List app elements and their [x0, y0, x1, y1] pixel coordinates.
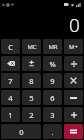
button[interactable]: C — [1, 39, 20, 54]
button[interactable]: Equals — [64, 124, 83, 139]
staticText: C — [8, 42, 13, 52]
staticText: M+ — [69, 43, 78, 51]
button[interactable]: Plus — [64, 107, 83, 122]
button[interactable]: Multiply — [64, 73, 83, 88]
button[interactable]: MR — [43, 39, 62, 54]
staticText: 9 — [50, 76, 55, 86]
staticText: 1 — [8, 110, 13, 120]
button[interactable]: % — [43, 56, 62, 71]
button[interactable]: Plus minus — [22, 56, 41, 71]
staticText: 2 — [29, 110, 34, 120]
button[interactable]: . — [43, 124, 62, 139]
button[interactable]: Divide — [64, 56, 83, 71]
staticText: 0 — [19, 127, 24, 137]
button[interactable]: 2 — [22, 107, 41, 122]
staticText: 7 — [8, 76, 13, 86]
staticText: 5 — [29, 93, 34, 103]
staticText: % — [49, 59, 56, 69]
button[interactable]: 8 — [22, 73, 41, 88]
staticText: MC — [27, 43, 37, 51]
button[interactable]: 3 — [43, 107, 62, 122]
staticText: 6 — [50, 93, 55, 103]
staticText: . — [51, 127, 54, 137]
button[interactable]: 1 — [1, 107, 20, 122]
button[interactable]: 4 — [1, 90, 20, 105]
button[interactable]: Backspace — [1, 56, 20, 71]
staticText: 4 — [8, 93, 13, 103]
button[interactable]: 0 — [1, 124, 41, 139]
button[interactable]: MC — [22, 39, 41, 54]
button[interactable]: M+ — [64, 39, 83, 54]
button[interactable]: 5 — [22, 90, 41, 105]
staticText: 3 — [50, 110, 55, 120]
button[interactable]: 6 — [43, 90, 62, 105]
staticText: MR — [48, 43, 58, 51]
staticText: 0 — [69, 12, 80, 38]
staticText: 8 — [29, 76, 34, 86]
button[interactable]: 7 — [1, 73, 20, 88]
button[interactable]: Minus — [64, 90, 83, 105]
button[interactable]: 9 — [43, 73, 62, 88]
